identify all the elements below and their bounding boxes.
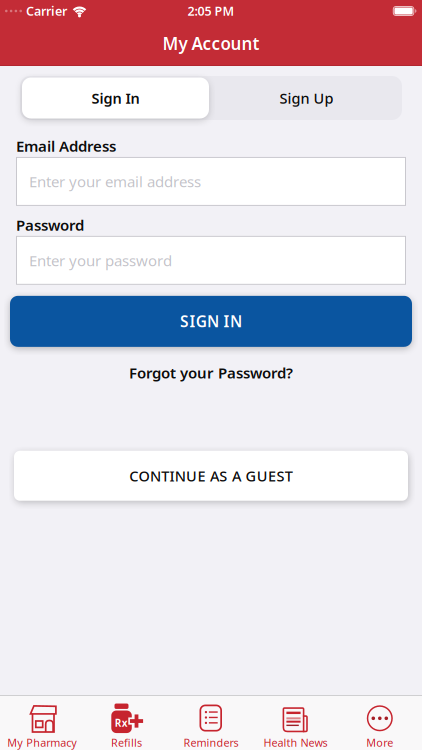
- staticText: Email Address: [16, 136, 116, 156]
- button[interactable]: Enter your password: [16, 236, 406, 285]
- staticText: Refills: [111, 735, 142, 750]
- button[interactable]: Sign In: [20, 76, 211, 120]
- button[interactable]: CONTINUE AS A GUEST: [14, 451, 408, 501]
- staticText: Enter your password: [29, 250, 172, 270]
- staticText: Reminders: [183, 735, 238, 750]
- staticText: Password: [16, 215, 84, 235]
- staticText: CONTINUE AS A GUEST: [129, 466, 293, 485]
- button[interactable]: More: [338, 704, 422, 750]
- staticText: Enter your email address: [29, 171, 201, 191]
- staticText: Sign In: [91, 88, 139, 108]
- staticText: Carrier: [26, 3, 67, 19]
- staticText: SIGN IN: [180, 311, 242, 332]
- staticText: Sign Up: [279, 88, 333, 108]
- button[interactable]: Health News: [253, 704, 338, 750]
- staticText: Health News: [263, 735, 327, 750]
- button[interactable]: Enter your email address: [16, 157, 406, 206]
- staticText: 2:05 PM: [187, 3, 234, 19]
- staticText: My Account: [162, 32, 259, 55]
- staticText: More: [366, 735, 393, 750]
- staticText: Rx: [115, 716, 128, 729]
- button[interactable]: Forgot your Password?: [129, 363, 293, 383]
- button[interactable]: Sign Up: [211, 76, 402, 120]
- button[interactable]: Reminders: [169, 704, 253, 750]
- button[interactable]: Refills: [84, 704, 169, 750]
- button[interactable]: SIGN IN: [10, 296, 412, 347]
- button[interactable]: My Pharmacy: [0, 704, 84, 750]
- staticText: My Pharmacy: [7, 735, 77, 750]
- staticText: Forgot your Password?: [129, 363, 293, 383]
